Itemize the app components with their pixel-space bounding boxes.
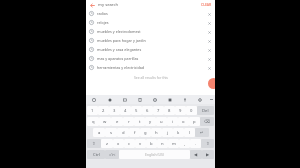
button[interactable]: Clipboard <box>132 95 147 104</box>
button[interactable]: Theme <box>162 95 177 104</box>
button[interactable]: i <box>167 117 178 126</box>
button[interactable]: Emoji <box>86 95 102 104</box>
button[interactable]: radios <box>86 9 215 18</box>
staticText: English (US) <box>145 152 164 157</box>
button[interactable]: Remove <box>206 56 212 62</box>
staticText: muebles para hogar y jardin <box>97 38 206 43</box>
button[interactable]: Back <box>88 1 96 9</box>
button[interactable]: n <box>157 139 168 148</box>
button[interactable]: w <box>99 117 111 126</box>
button[interactable]: e <box>111 117 123 126</box>
button[interactable]: ↵ <box>195 128 209 137</box>
button[interactable]: g <box>140 128 151 137</box>
button[interactable]: 9 <box>175 106 186 115</box>
button[interactable]: t <box>134 117 145 126</box>
button[interactable]: x <box>113 139 124 148</box>
staticText: Ctrl <box>93 152 100 158</box>
staticText: relojes <box>97 20 206 25</box>
staticText: radios <box>97 11 206 16</box>
button[interactable]: h <box>151 128 162 137</box>
button[interactable]: l <box>184 128 195 137</box>
button[interactable]: 2 <box>98 106 109 115</box>
button[interactable]: Voice <box>177 95 192 104</box>
staticText: b <box>150 141 153 147</box>
button[interactable]: Remove <box>206 11 212 17</box>
button[interactable]: relojes <box>86 18 215 27</box>
button[interactable]: Settings <box>192 95 207 104</box>
button[interactable]: u <box>156 117 167 126</box>
button[interactable]: herramientas y electricidad <box>86 63 215 72</box>
button[interactable]: k <box>173 128 184 137</box>
button[interactable]: 3 <box>109 106 120 115</box>
button[interactable]: j <box>162 128 173 137</box>
button[interactable]: mas y aparatos parrillas <box>86 54 215 63</box>
button[interactable]: 1 <box>87 106 98 115</box>
button[interactable]: CLEAR <box>200 2 213 7</box>
button[interactable]: Del <box>197 106 214 115</box>
button[interactable]: Remove <box>206 47 212 53</box>
staticText: d <box>122 130 125 136</box>
button[interactable]: Collapse <box>207 95 215 104</box>
staticText: ◀ <box>194 152 198 157</box>
button[interactable]: . <box>190 139 201 148</box>
staticText: p <box>193 119 196 125</box>
button[interactable]: 8 <box>164 106 175 115</box>
button[interactable]: GIF <box>117 95 132 104</box>
staticText: m <box>172 141 176 147</box>
button[interactable]: ◀ <box>190 150 202 159</box>
button[interactable]: Translate <box>147 95 162 104</box>
button[interactable]: Compose <box>208 78 219 89</box>
staticText: i <box>172 119 174 125</box>
button[interactable]: 7 <box>153 106 164 115</box>
staticText: 8 <box>168 108 171 114</box>
button[interactable]: m <box>168 139 179 148</box>
button[interactable]: b <box>146 139 157 148</box>
staticText: e <box>116 119 119 125</box>
button[interactable]: d <box>117 128 129 137</box>
staticText: 2 <box>102 108 105 114</box>
staticText: 0 <box>190 108 193 114</box>
button[interactable]: ▶ <box>202 150 214 159</box>
button[interactable]: Remove <box>206 29 212 35</box>
staticText: u <box>160 119 163 125</box>
button[interactable]: v <box>135 139 146 148</box>
button[interactable]: ⇧ <box>87 139 101 148</box>
button[interactable]: ⇧ <box>201 139 214 148</box>
staticText: n <box>161 141 164 147</box>
button[interactable]: p <box>189 117 200 126</box>
button[interactable]: , <box>179 139 190 148</box>
button[interactable]: muebles y casa elegantes <box>86 45 215 54</box>
button[interactable]: y <box>145 117 156 126</box>
button[interactable]: Ctrl <box>87 150 105 159</box>
button[interactable]: r <box>123 117 134 126</box>
button[interactable]: c <box>124 139 135 148</box>
staticText: my search <box>98 2 119 8</box>
staticText: ⌫ <box>204 119 210 124</box>
staticText: 6 <box>146 108 149 114</box>
button[interactable]: a <box>93 128 105 137</box>
button[interactable]: 6 <box>142 106 153 115</box>
button[interactable]: 5 <box>131 106 142 115</box>
staticText: g <box>144 130 147 136</box>
staticText: c <box>128 141 131 147</box>
button[interactable]: s <box>105 128 117 137</box>
button[interactable]: Sticker <box>102 95 117 104</box>
button[interactable]: z <box>101 139 113 148</box>
button[interactable]: 0 <box>186 106 197 115</box>
button[interactable]: =\< <box>105 150 119 159</box>
button[interactable]: Remove <box>206 65 212 71</box>
button[interactable]: muebles y electrodomest <box>86 27 215 36</box>
button[interactable]: ⌫ <box>200 117 214 126</box>
button[interactable]: o <box>178 117 189 126</box>
button[interactable]: Remove <box>206 38 212 44</box>
button[interactable]: Remove <box>206 20 212 26</box>
staticText: 7 <box>157 108 160 114</box>
button[interactable]: English (US) <box>119 150 190 159</box>
staticText: =\< <box>109 152 116 158</box>
button[interactable]: f <box>129 128 140 137</box>
staticText: o <box>182 119 185 125</box>
staticText: 1 <box>91 108 94 114</box>
button[interactable]: muebles para hogar y jardin <box>86 36 215 45</box>
button[interactable]: q <box>87 117 99 126</box>
button[interactable]: 4 <box>120 106 131 115</box>
